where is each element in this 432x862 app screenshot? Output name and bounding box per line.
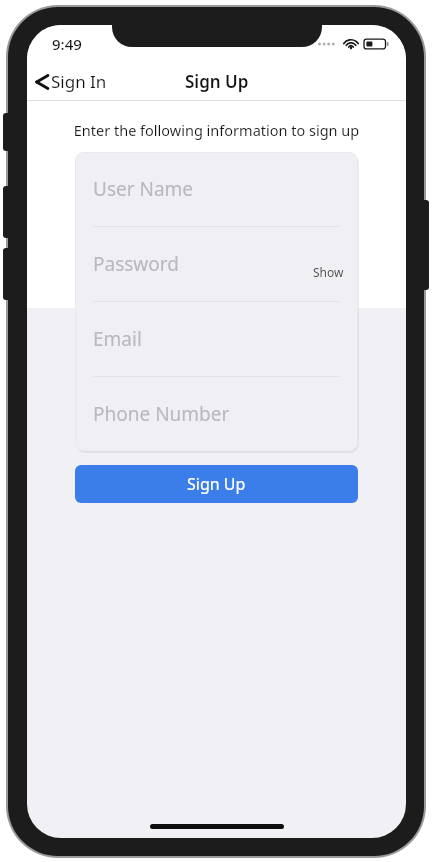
staticText: User Name — [93, 176, 194, 202]
staticText: Email — [93, 326, 142, 352]
staticText: Password — [93, 251, 179, 277]
button[interactable]: Phone Number — [75, 377, 358, 451]
button[interactable]: User Name — [75, 152, 358, 226]
staticText: Enter the following information to sign … — [27, 120, 406, 140]
button[interactable]: Sign Up — [75, 465, 358, 503]
staticText: 9:49 — [52, 34, 82, 54]
staticText: Sign In — [51, 70, 107, 93]
staticText: Sign Up — [187, 473, 246, 495]
button[interactable]: Show — [313, 264, 344, 280]
staticText: Sign Up — [185, 70, 249, 93]
button[interactable]: Email — [75, 302, 358, 376]
button[interactable]: Sign In — [35, 70, 107, 93]
button[interactable]: Password — [75, 227, 358, 301]
staticText: Phone Number — [93, 401, 230, 427]
staticText: Show — [313, 264, 344, 280]
